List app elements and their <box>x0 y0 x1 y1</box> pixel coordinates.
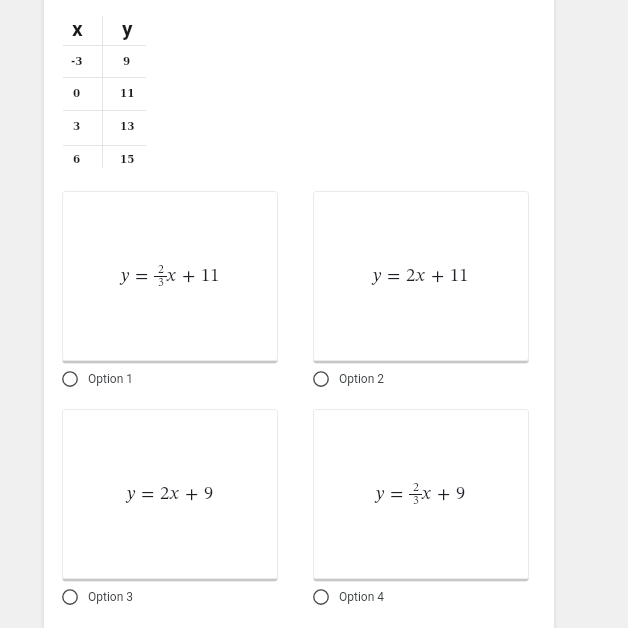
staticText: y <box>373 267 382 286</box>
staticText: x <box>72 17 83 41</box>
button[interactable]: Select Option 4 <box>313 589 529 605</box>
staticText: Option 4 <box>339 590 385 604</box>
staticText: 11 <box>450 267 469 286</box>
staticText: 3 <box>413 495 419 507</box>
staticText: = <box>141 485 155 504</box>
staticText: 9 <box>456 485 466 504</box>
staticText: Option 2 <box>339 372 385 386</box>
staticText: 0 <box>73 86 81 100</box>
button[interactable]: Answer card for Option 4 <box>313 409 529 579</box>
staticText: 6 <box>73 152 81 166</box>
button[interactable]: Answer card for Option 2 <box>313 191 529 361</box>
staticText: Option 1 <box>88 372 134 386</box>
staticText: = <box>387 267 401 286</box>
staticText: 2 <box>158 264 164 276</box>
staticText: 11 <box>120 86 135 100</box>
staticText: x <box>416 267 425 286</box>
staticText: + <box>182 267 196 286</box>
button[interactable]: Answer card for Option 1 <box>62 191 278 361</box>
staticText: x <box>422 485 431 504</box>
staticText: 2 <box>160 485 170 504</box>
staticText: x <box>167 267 176 286</box>
staticText: y <box>121 267 130 286</box>
staticText: 13 <box>120 119 135 133</box>
staticText: 11 <box>201 267 220 286</box>
staticText: y <box>122 17 133 41</box>
staticText: 9 <box>123 54 131 68</box>
staticText: 9 <box>204 485 214 504</box>
staticText: y <box>376 485 385 504</box>
staticText: -3 <box>71 54 83 68</box>
staticText: 2 <box>406 267 416 286</box>
staticText: = <box>390 485 404 504</box>
staticText: + <box>437 485 451 504</box>
staticText: 3 <box>73 119 81 133</box>
staticText: 3 <box>158 277 164 289</box>
button[interactable]: Answer card for Option 3 <box>62 409 278 579</box>
button[interactable]: Select Option 1 <box>62 371 278 387</box>
staticText: = <box>135 267 149 286</box>
staticText: x <box>170 485 179 504</box>
staticText: 2 <box>413 482 419 494</box>
staticText: + <box>431 267 445 286</box>
staticText: 15 <box>120 152 135 166</box>
button[interactable]: Select Option 3 <box>62 589 278 605</box>
staticText: Option 3 <box>88 590 134 604</box>
staticText: + <box>185 485 199 504</box>
button[interactable]: Select Option 2 <box>313 371 529 387</box>
staticText: y <box>127 485 136 504</box>
